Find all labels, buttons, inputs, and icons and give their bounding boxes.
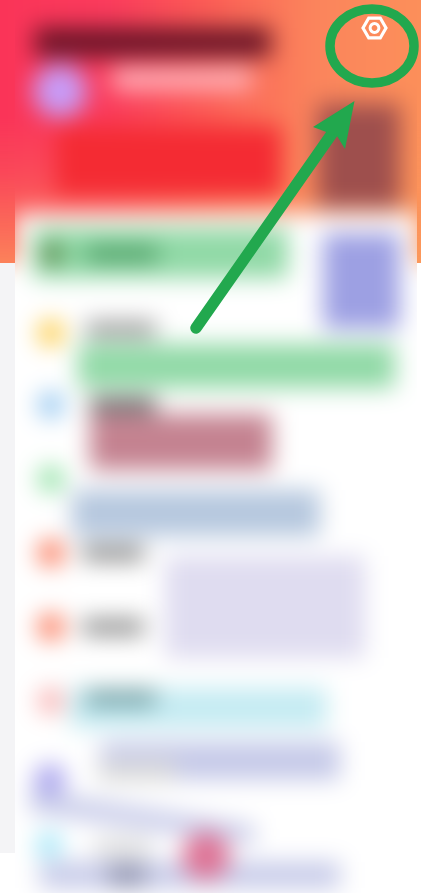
button[interactable]: Settings xyxy=(326,5,418,87)
